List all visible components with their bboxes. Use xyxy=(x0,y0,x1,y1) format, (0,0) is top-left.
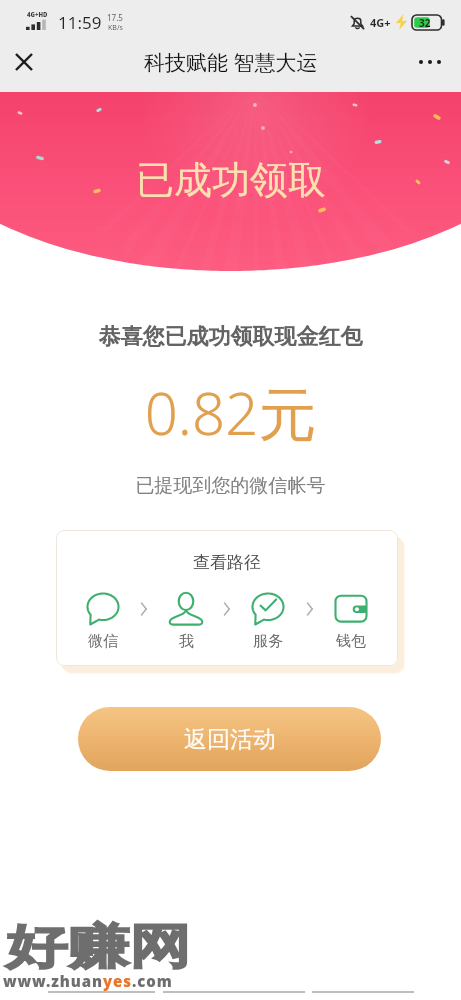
staticText: yes xyxy=(103,971,132,991)
staticText: 我 xyxy=(179,632,194,651)
button[interactable]: More options xyxy=(412,44,448,80)
staticText: 返回活动 xyxy=(184,725,276,754)
button[interactable]: 钱包 xyxy=(325,592,377,651)
staticText: 已提现到您的微信帐号 xyxy=(0,474,461,498)
staticText: 11:59 xyxy=(58,11,102,34)
button[interactable]: 返回活动 xyxy=(78,707,381,771)
staticText: 好赚网 xyxy=(6,917,191,977)
button[interactable]: Close xyxy=(6,44,42,80)
staticText: 0.82元 xyxy=(0,373,461,452)
staticText: 科技赋能 智慧大运 xyxy=(144,48,318,77)
button[interactable]: 服务 xyxy=(242,592,294,651)
staticText: www.zhuan xyxy=(3,971,103,991)
button[interactable]: 微信 xyxy=(77,592,129,651)
button[interactable]: 我 xyxy=(160,592,212,651)
staticText: 查看路径 xyxy=(56,552,398,573)
staticText: 17.5 xyxy=(107,12,123,23)
staticText: 恭喜您已成功领取现金红包 xyxy=(0,323,461,351)
staticText: 4G+ xyxy=(370,15,391,30)
staticText: 4G+HD xyxy=(27,11,48,19)
staticText: 钱包 xyxy=(336,632,366,651)
staticText: KB/s xyxy=(108,23,123,33)
staticText: 服务 xyxy=(253,632,283,651)
staticText: 已成功领取 xyxy=(136,156,326,204)
staticText: .com xyxy=(132,971,173,991)
staticText: 微信 xyxy=(88,632,118,651)
staticText: 32 xyxy=(419,16,431,30)
